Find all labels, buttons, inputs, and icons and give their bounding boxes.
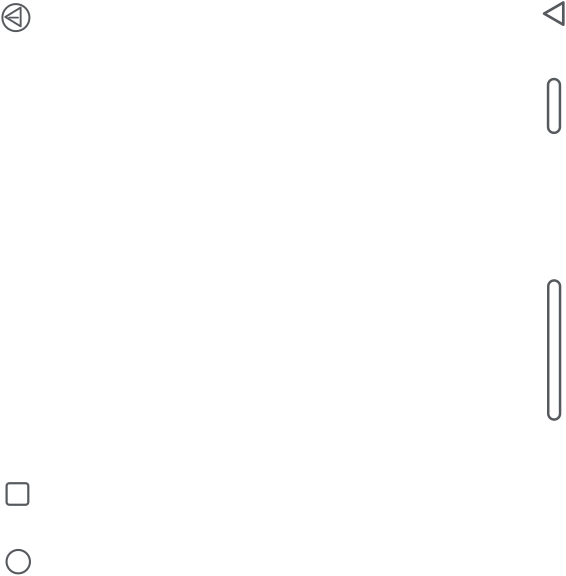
button[interactable]: Back — [0, 2, 32, 34]
button[interactable]: Play — [538, 0, 566, 31]
button[interactable]: Exposure — [542, 274, 566, 425]
button[interactable]: Zoom — [542, 73, 566, 139]
button[interactable]: Stop — [1, 477, 34, 511]
button[interactable]: Record — [0, 544, 36, 576]
